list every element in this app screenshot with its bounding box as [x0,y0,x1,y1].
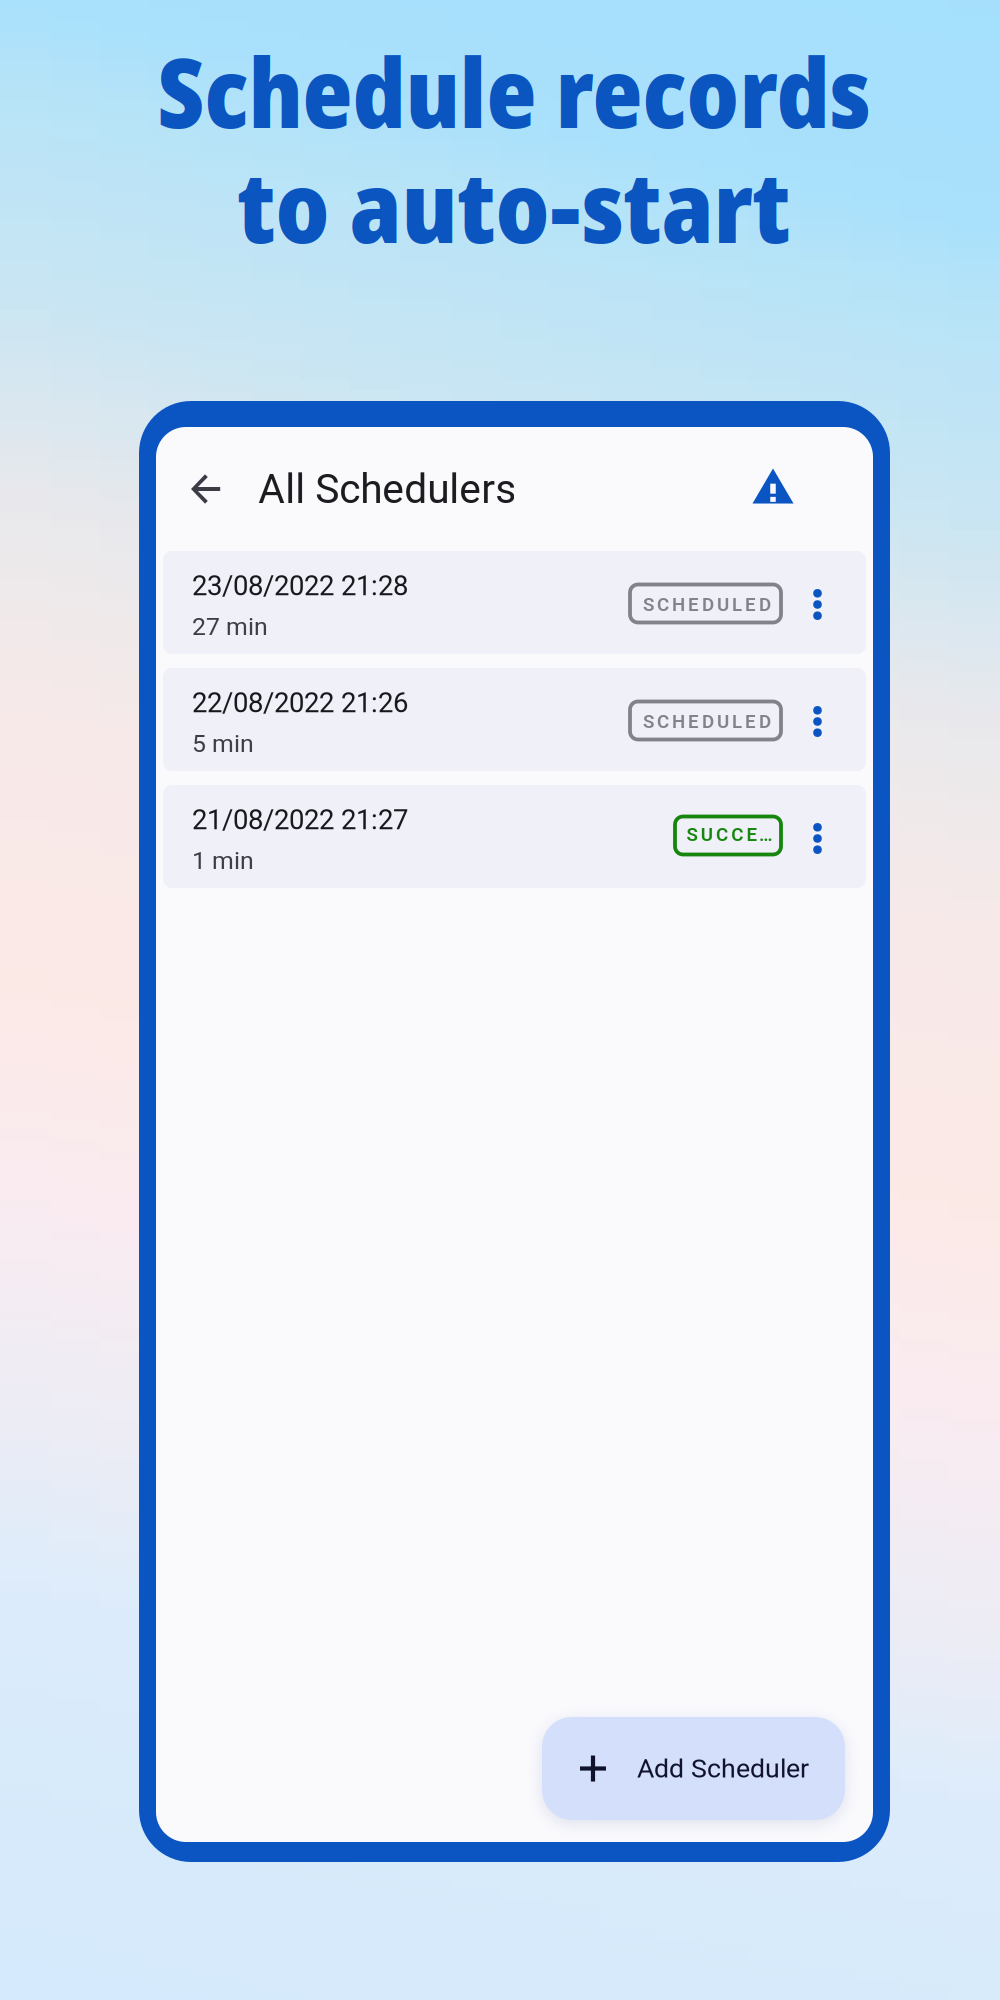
button[interactable]: Warning [743,458,803,520]
staticText: to auto-start [237,138,790,272]
staticText: 27 min [192,612,268,641]
staticText: 23/08/2022 21:28 [192,570,408,602]
button[interactable]: 21/08/2022 21:27 [163,785,866,888]
button[interactable]: 22/08/2022 21:26 [163,668,866,771]
staticText: 1 min [192,846,254,875]
button[interactable]: Back [174,458,237,520]
staticText: SCHEDULED [643,711,771,732]
staticText: SUCCED [687,824,773,845]
staticText: Schedule records [157,26,870,156]
staticText: Add Scheduler [637,1753,809,1784]
staticText: 22/08/2022 21:26 [192,687,408,719]
staticText: 5 min [192,729,254,758]
button[interactable]: 23/08/2022 21:28 [163,551,866,654]
staticText: 21/08/2022 21:27 [192,804,408,836]
staticText: SCHEDULED [643,594,771,615]
staticText: All Schedulers [258,465,516,513]
button[interactable]: Add Scheduler [542,1715,845,1818]
